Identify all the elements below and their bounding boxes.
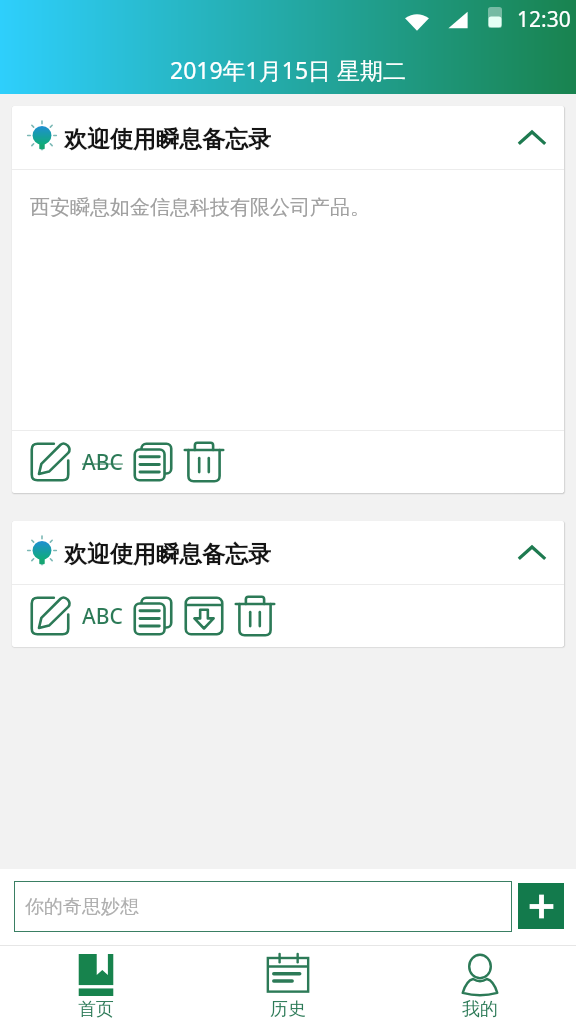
- staticText: ABC: [82, 602, 123, 631]
- button[interactable]: 欢迎使用瞬息备忘录: [12, 521, 564, 584]
- button[interactable]: Add: [518, 883, 564, 929]
- button[interactable]: 历史: [192, 946, 384, 1021]
- button[interactable]: Copy: [129, 438, 177, 486]
- button[interactable]: 我的: [384, 946, 576, 1021]
- staticText: 12:30: [517, 5, 571, 34]
- button[interactable]: Edit: [26, 438, 74, 486]
- button[interactable]: Delete: [180, 438, 228, 486]
- staticText: 历史: [270, 998, 306, 1021]
- button[interactable]: ABC: [78, 598, 127, 635]
- button[interactable]: Collapse: [510, 116, 554, 160]
- staticText: 我的: [462, 998, 498, 1021]
- staticText: 欢迎使用瞬息备忘录: [64, 125, 271, 154]
- button[interactable]: Copy: [129, 592, 177, 640]
- staticText: 欢迎使用瞬息备忘录: [64, 540, 271, 569]
- button[interactable]: Delete: [231, 592, 279, 640]
- staticText: 首页: [78, 998, 114, 1021]
- button[interactable]: 首页: [0, 946, 192, 1021]
- staticText: 西安瞬息如金信息科技有限公司产品。: [30, 195, 370, 220]
- button[interactable]: 欢迎使用瞬息备忘录: [12, 106, 564, 169]
- button[interactable]: ABC: [78, 444, 127, 481]
- staticText: 你的奇思妙想: [25, 895, 139, 919]
- staticText: 2019年1月15日 星期二: [170, 54, 407, 85]
- button[interactable]: Download: [180, 592, 228, 640]
- staticText: ABC: [82, 448, 123, 477]
- button[interactable]: Edit: [26, 592, 74, 640]
- button[interactable]: Collapse: [510, 531, 554, 575]
- button[interactable]: 你的奇思妙想: [14, 881, 512, 932]
